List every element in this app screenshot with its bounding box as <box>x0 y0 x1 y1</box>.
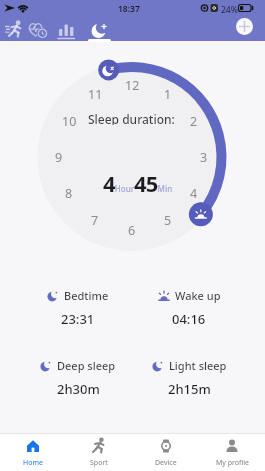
staticText: 11 <box>88 86 103 102</box>
staticText: 8 <box>65 185 73 201</box>
staticText: 2h15m <box>168 380 211 398</box>
staticText: 2h30m <box>57 380 100 398</box>
staticText: Wake up <box>175 288 221 303</box>
button[interactable]: Device <box>133 437 199 471</box>
staticText: My profile <box>216 458 249 468</box>
staticText: Sleep duration: <box>88 111 175 125</box>
button[interactable]: My profile <box>199 437 265 471</box>
button[interactable] <box>4 20 25 41</box>
staticText: 1 <box>164 86 172 102</box>
staticText: 4Hour45Min <box>103 168 173 194</box>
staticText: Deep sleep <box>57 358 116 373</box>
button[interactable] <box>57 21 77 40</box>
staticText: Device <box>155 458 177 468</box>
staticText: 12 <box>125 77 140 93</box>
staticText: 18:37 <box>118 3 140 15</box>
staticText: 7 <box>91 212 99 228</box>
button[interactable]: Light sleep <box>128 358 250 406</box>
button[interactable] <box>27 20 49 41</box>
staticText: 9 <box>55 149 63 165</box>
staticText: Sport <box>90 458 108 468</box>
staticText: 10 <box>62 113 77 129</box>
button[interactable]: Bedtime <box>17 288 139 336</box>
button[interactable]: Sport <box>66 437 132 471</box>
staticText: 4 <box>190 185 198 201</box>
staticText: Light sleep <box>169 358 227 373</box>
button[interactable]: Wake up <box>128 288 250 336</box>
staticText: 04:16 <box>172 310 206 328</box>
staticText: 3 <box>200 149 208 165</box>
button[interactable] <box>236 18 253 35</box>
staticText: 6 <box>128 222 136 238</box>
staticText: 2 <box>190 113 198 129</box>
button[interactable]: Deep sleep <box>17 358 139 406</box>
button[interactable] <box>89 20 110 41</box>
staticText: 23:31 <box>61 310 95 328</box>
staticText: 5 <box>164 212 172 228</box>
staticText: Bedtime <box>64 288 109 303</box>
staticText: Home <box>23 458 43 468</box>
staticText: 24% <box>221 4 238 16</box>
button[interactable]: Home <box>0 437 66 471</box>
